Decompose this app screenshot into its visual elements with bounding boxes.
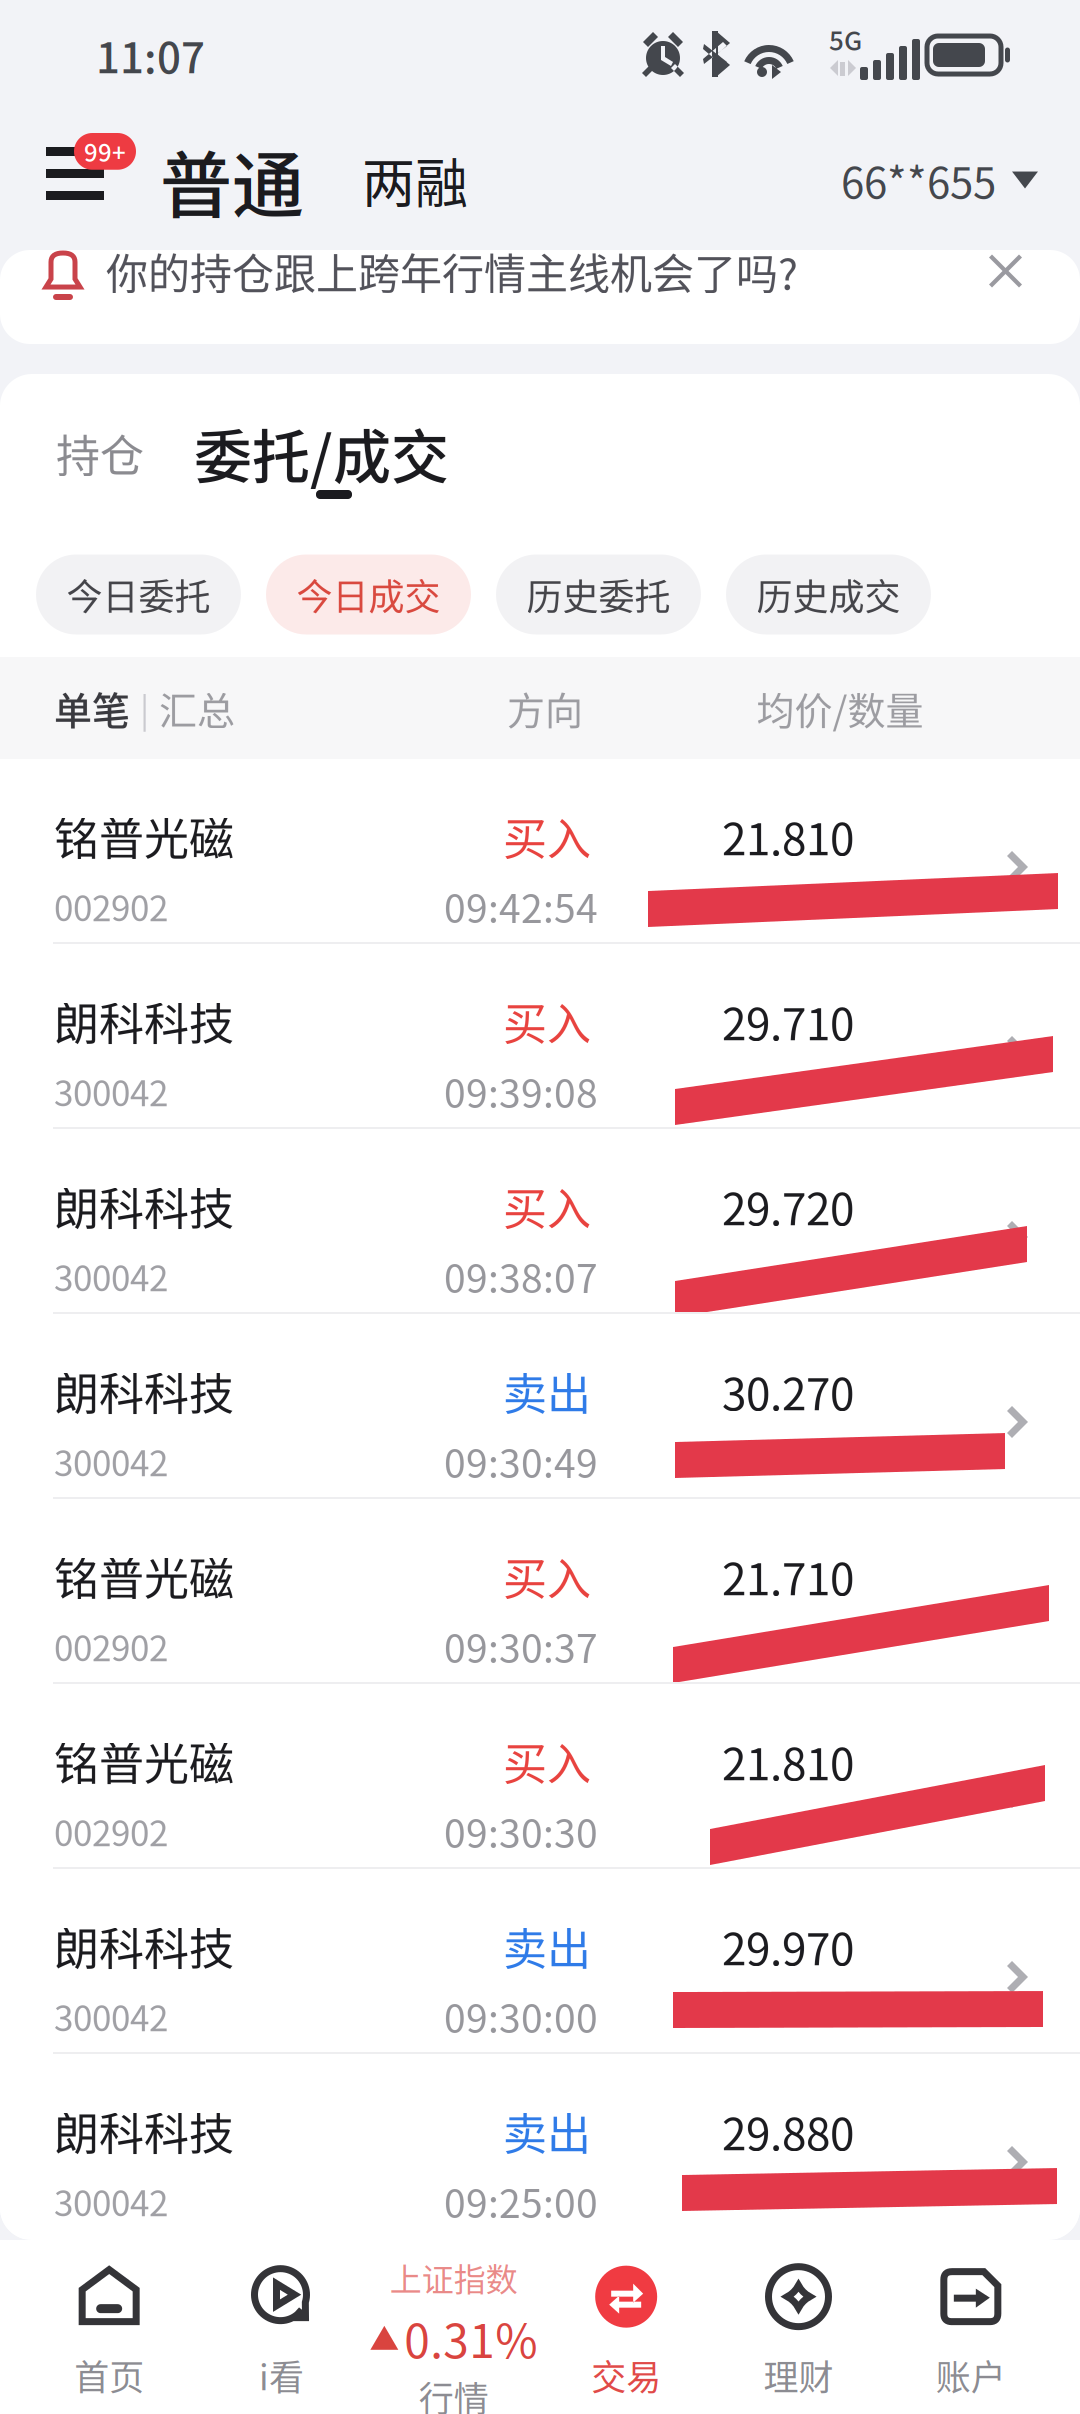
staticText: 铭普光磁 — [54, 1728, 234, 1794]
staticText: 均价/数量 — [756, 680, 923, 735]
button[interactable]: 交易 — [540, 2240, 712, 2414]
staticText: 卖出 — [503, 2099, 591, 2163]
staticText: 29.970 — [722, 1914, 854, 1978]
staticText: 买入 — [503, 1174, 591, 1238]
staticText: 单笔 — [54, 680, 130, 735]
staticText: 09:30:30 — [444, 1803, 598, 1859]
button[interactable]: 今日成交 — [266, 554, 471, 634]
button[interactable]: 历史委托 — [496, 554, 701, 634]
staticText: 朗科科技 — [54, 988, 234, 1054]
staticText: 002902 — [54, 1806, 168, 1856]
staticText: 300042 — [54, 1436, 168, 1486]
button[interactable]: 持仓 — [56, 421, 144, 485]
button[interactable]: 铭普光磁 — [0, 1499, 1080, 1684]
staticText: 买入 — [503, 1544, 591, 1608]
staticText: 历史成交 — [756, 568, 900, 620]
staticText: 理财 — [763, 2350, 833, 2400]
button[interactable]: 朗科科技 — [0, 1869, 1080, 2054]
staticText: 21.710 — [722, 1544, 854, 1608]
staticText: 首页 — [74, 2350, 144, 2400]
staticText: 朗科科技 — [54, 1173, 234, 1239]
staticText: 委托/成交 — [194, 411, 449, 495]
staticText: 5G — [829, 20, 862, 58]
staticText: 普通 — [160, 128, 304, 232]
staticText: 0.31% — [404, 2304, 537, 2371]
staticText: 09:38:07 — [444, 1248, 598, 1304]
button[interactable]: Menu — [46, 145, 146, 215]
staticText: 买入 — [503, 989, 591, 1053]
staticText: 09:30:49 — [444, 1433, 598, 1489]
staticText: 账户 — [936, 2350, 1006, 2400]
staticText: 汇总 — [159, 680, 235, 735]
staticText: 上证指数 — [390, 2254, 518, 2300]
staticText: 方向 — [507, 680, 583, 735]
button[interactable]: i看 — [195, 2240, 368, 2414]
staticText: 11:07 — [96, 25, 205, 85]
button[interactable]: 委托/成交 — [194, 411, 449, 495]
staticText: 29.880 — [722, 2099, 854, 2163]
button[interactable]: 你的持仓跟上跨年行情主线机会了吗? — [0, 250, 1080, 344]
staticText: | — [140, 683, 149, 733]
staticText: 朗科科技 — [54, 1913, 234, 1979]
button[interactable]: 首页 — [23, 2240, 195, 2414]
staticText: 99+ — [84, 134, 126, 169]
button[interactable]: 普通 — [160, 128, 304, 232]
staticText: 29.710 — [722, 989, 854, 1053]
staticText: 历史委托 — [526, 568, 670, 620]
staticText: 21.810 — [722, 1729, 854, 1793]
button[interactable]: 历史成交 — [726, 554, 931, 634]
staticText: 002902 — [54, 881, 168, 931]
staticText: 300042 — [54, 2176, 168, 2226]
staticText: 09:42:54 — [444, 878, 598, 934]
staticText: 002902 — [54, 1621, 168, 1671]
staticText: 09:39:08 — [444, 1063, 598, 1119]
staticText: 铭普光磁 — [54, 1543, 234, 1609]
staticText: 持仓 — [56, 421, 144, 485]
button[interactable]: 铭普光磁 — [0, 1684, 1080, 1869]
staticText: 09:30:37 — [444, 1618, 598, 1674]
button[interactable]: 朗科科技 — [0, 1314, 1080, 1499]
button[interactable]: 朗科科技 — [0, 2054, 1080, 2239]
staticText: 行情 — [419, 2371, 489, 2414]
staticText: 今日成交 — [296, 568, 440, 620]
staticText: 两融 — [362, 142, 468, 218]
staticText: 今日委托 — [66, 568, 210, 620]
button[interactable]: 66**655 — [841, 150, 1038, 210]
staticText: i看 — [259, 2350, 304, 2400]
button[interactable]: 朗科科技 — [0, 1129, 1080, 1314]
staticText: 30.270 — [722, 1359, 854, 1423]
button[interactable]: 铭普光磁 — [0, 759, 1080, 944]
staticText: 卖出 — [503, 1914, 591, 1978]
staticText: 300042 — [54, 1991, 168, 2041]
staticText: 买入 — [503, 1729, 591, 1793]
button[interactable]: 两融 — [362, 142, 468, 218]
button[interactable]: 今日委托 — [36, 554, 241, 634]
staticText: 21.810 — [722, 804, 854, 868]
staticText: 交易 — [591, 2350, 661, 2400]
staticText: 你的持仓跟上跨年行情主线机会了吗? — [106, 241, 798, 301]
staticText: 09:25:00 — [444, 2173, 598, 2229]
button[interactable]: 账户 — [885, 2240, 1057, 2414]
staticText: 29.720 — [722, 1174, 854, 1238]
staticText: 朗科科技 — [54, 1358, 234, 1424]
staticText: 买入 — [503, 804, 591, 868]
staticText: 朗科科技 — [54, 2098, 234, 2164]
staticText: 09:30:00 — [444, 1988, 598, 2044]
staticText: 66**655 — [841, 150, 996, 210]
button[interactable]: 单笔 — [54, 680, 130, 735]
button[interactable]: 朗科科技 — [0, 944, 1080, 1129]
staticText: 卖出 — [503, 1359, 591, 1423]
button[interactable]: 上证指数 — [368, 2240, 540, 2414]
button[interactable]: 汇总 — [159, 680, 235, 735]
staticText: 300042 — [54, 1251, 168, 1301]
staticText: 300042 — [54, 1066, 168, 1116]
staticText: 铭普光磁 — [54, 803, 234, 869]
button[interactable]: 理财 — [712, 2240, 885, 2414]
